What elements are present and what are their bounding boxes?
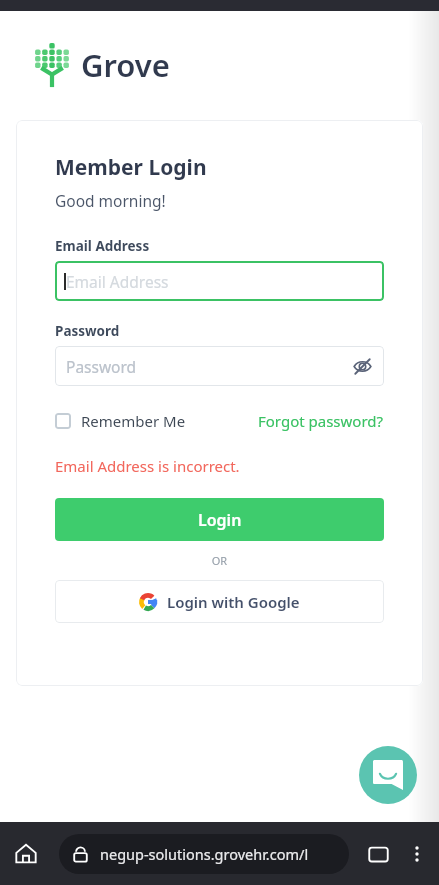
- button[interactable]: Email Address: [55, 261, 384, 301]
- staticText: Email Address: [66, 271, 169, 292]
- button[interactable]: More options: [402, 839, 432, 869]
- staticText: Grove: [81, 44, 170, 86]
- staticText: OR: [55, 553, 384, 568]
- staticText: Member Login: [55, 153, 207, 182]
- staticText: negup-solutions.grovehr.com/l: [100, 844, 309, 864]
- staticText: Email Address is incorrect.: [55, 456, 240, 476]
- button[interactable]: Tabs: [361, 837, 395, 871]
- staticText: Login with Google: [167, 592, 300, 612]
- staticText: Remember Me: [81, 411, 186, 431]
- staticText: Login: [198, 509, 242, 531]
- button[interactable]: Forgot password?: [258, 411, 384, 431]
- button[interactable]: Show password: [349, 353, 375, 379]
- button[interactable]: Remember Me: [55, 411, 186, 431]
- staticText: Password: [66, 356, 137, 377]
- button[interactable]: Home: [9, 837, 43, 871]
- button[interactable]: Login: [55, 498, 384, 541]
- button[interactable]: negup-solutions.grovehr.com/l: [59, 834, 349, 874]
- staticText: Password: [55, 322, 120, 340]
- staticText: Good morning!: [55, 190, 166, 211]
- button[interactable]: Open chat: [359, 746, 417, 804]
- staticText: Email Address: [55, 237, 150, 255]
- button[interactable]: Password: [55, 346, 384, 386]
- button[interactable]: Login with Google: [55, 580, 384, 623]
